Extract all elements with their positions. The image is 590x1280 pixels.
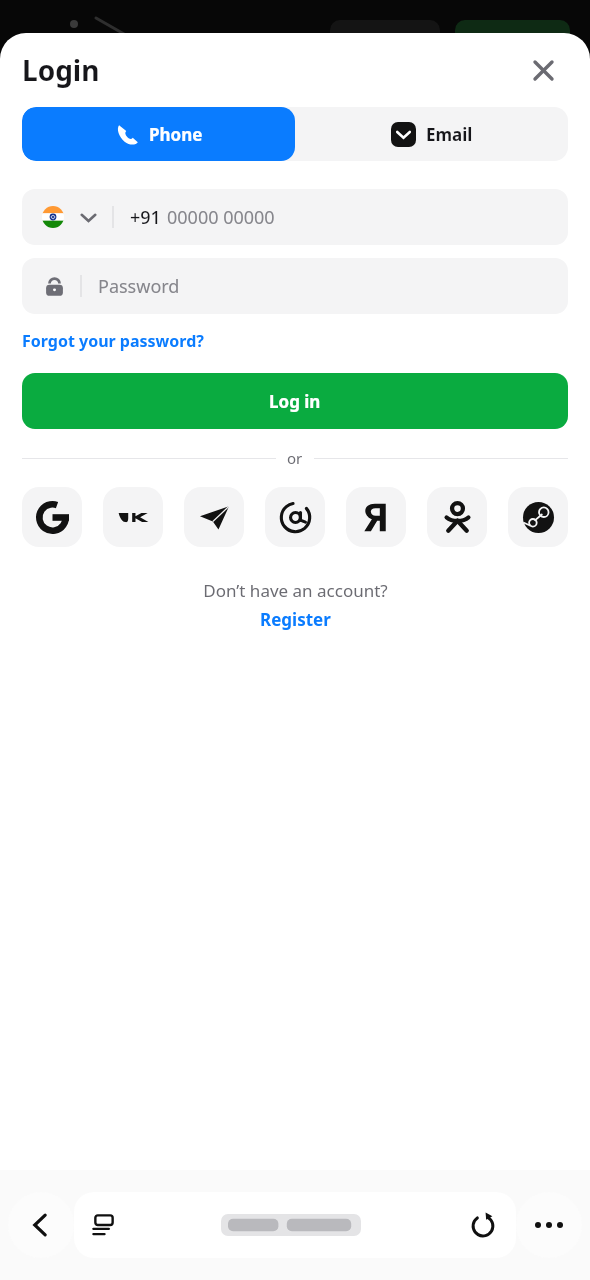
button[interactable]: Reload bbox=[466, 1208, 500, 1242]
button[interactable]: Sign in with Telegram bbox=[184, 487, 244, 547]
button[interactable]: Sign in with Yandex bbox=[346, 487, 406, 547]
other: Tabs bbox=[92, 1213, 116, 1237]
staticText: Email bbox=[426, 123, 473, 146]
button[interactable]: Back bbox=[8, 1192, 74, 1258]
button[interactable]: More options bbox=[516, 1192, 582, 1258]
staticText: or bbox=[287, 448, 303, 468]
button[interactable]: Close bbox=[526, 53, 560, 87]
button[interactable]: Email bbox=[295, 107, 568, 161]
staticText: Login bbox=[22, 51, 100, 89]
button[interactable]: Log in bbox=[22, 373, 568, 429]
staticText: Don’t have an account? bbox=[203, 579, 388, 602]
other: Select country code bbox=[80, 209, 97, 226]
staticText: Password bbox=[98, 274, 180, 299]
staticText: 00000 00000 bbox=[167, 205, 275, 230]
button[interactable]: Select country code bbox=[22, 189, 568, 245]
button[interactable]: Password bbox=[22, 258, 568, 314]
button[interactable]: Sign in with Google bbox=[22, 487, 82, 547]
button[interactable]: Sign in with VK bbox=[103, 487, 163, 547]
button[interactable]: Register bbox=[260, 608, 331, 631]
staticText: Log in bbox=[269, 390, 321, 413]
staticText: +91 bbox=[130, 205, 161, 230]
button[interactable]: Sign in with Mail bbox=[265, 487, 325, 547]
button[interactable]: Sign in with Steam bbox=[508, 487, 568, 547]
button[interactable]: Sign in with Odnoklassniki bbox=[427, 487, 487, 547]
button[interactable]: Phone bbox=[22, 107, 295, 161]
button[interactable]: Forgot your password? bbox=[22, 330, 204, 352]
staticText: Phone bbox=[149, 123, 203, 146]
button[interactable]: Address bar bbox=[74, 1192, 516, 1258]
